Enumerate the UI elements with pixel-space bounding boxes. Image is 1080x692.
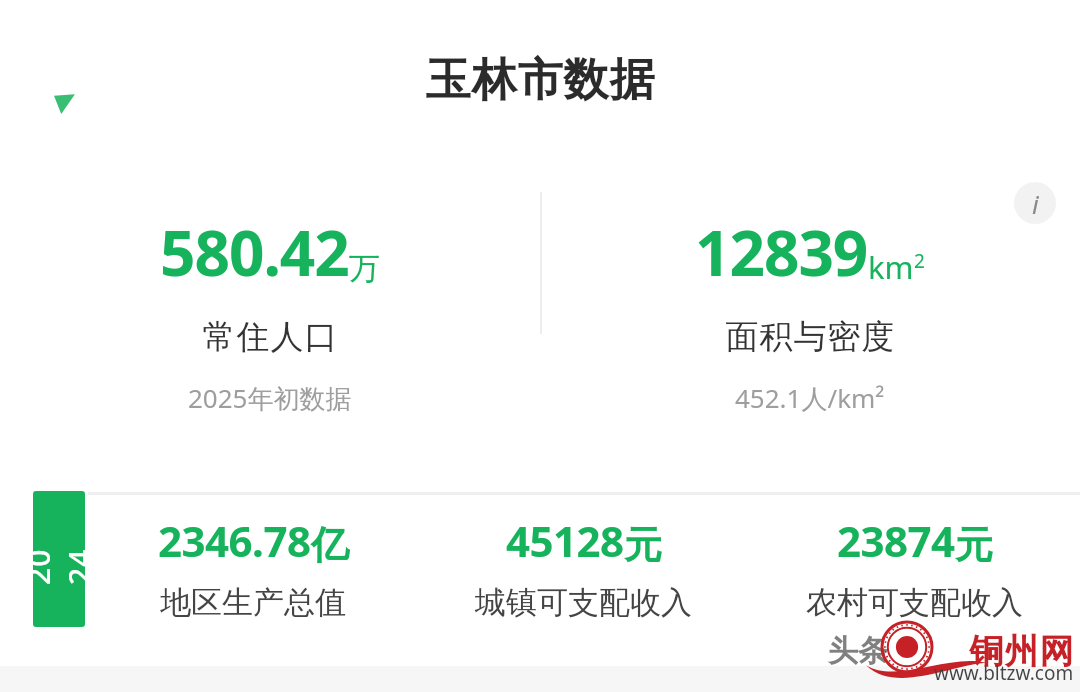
staticText: 45128 bbox=[506, 512, 624, 569]
staticText: 面积与密度 bbox=[725, 316, 895, 358]
staticText: i bbox=[1032, 186, 1039, 221]
staticText: 2025年初数据 bbox=[188, 380, 352, 416]
button[interactable]: 23874 bbox=[749, 512, 1080, 622]
staticText: 铜州网 bbox=[969, 630, 1074, 673]
staticText: 地区生产总值 bbox=[160, 583, 346, 622]
button[interactable]: 12839 bbox=[540, 178, 1080, 438]
staticText: 元 bbox=[624, 521, 662, 569]
staticText: 2024 bbox=[33, 533, 85, 585]
staticText: km bbox=[868, 246, 914, 288]
staticText: 常住人口 bbox=[202, 316, 338, 358]
button[interactable]: 2346.78 bbox=[88, 512, 418, 622]
staticText: 580.42 bbox=[160, 210, 349, 294]
staticText: 452.1人/km² bbox=[735, 380, 885, 416]
button[interactable]: More information bbox=[1014, 182, 1056, 224]
staticText: 农村可支配收入 bbox=[806, 583, 1023, 622]
staticText: 元 bbox=[955, 521, 993, 569]
staticText: www.bltzw.com bbox=[934, 660, 1074, 686]
staticText: 12839 bbox=[695, 210, 868, 294]
staticText: 城镇可支配收入 bbox=[475, 583, 692, 622]
staticText: 23874 bbox=[837, 512, 955, 569]
button[interactable]: 玉林市数据 bbox=[0, 52, 1080, 109]
staticText: 2 bbox=[914, 248, 925, 274]
button[interactable]: 45128 bbox=[418, 512, 749, 622]
button[interactable]: 2024 bbox=[33, 491, 85, 627]
staticText: 玉林市数据 bbox=[425, 52, 655, 109]
staticText: 2346.78 bbox=[158, 512, 311, 569]
staticText: 万 bbox=[349, 249, 380, 288]
staticText: 头条 bbox=[828, 632, 888, 670]
button[interactable]: 580.42 bbox=[0, 178, 540, 438]
staticText: 亿 bbox=[311, 521, 349, 569]
